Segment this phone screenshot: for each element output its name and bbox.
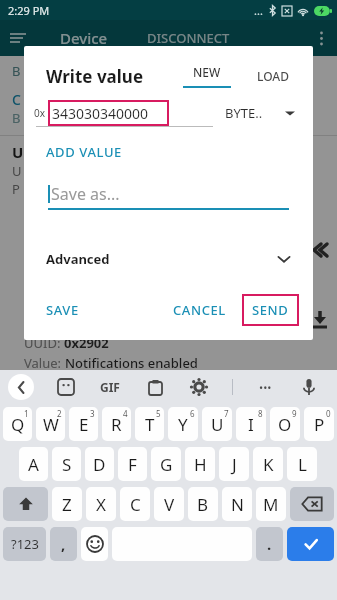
other: Backspace — [301, 493, 323, 515]
staticText: 2 — [57, 408, 62, 419]
staticText: Notifications enabled — [65, 354, 198, 372]
staticText: 1 — [24, 408, 29, 419]
staticText: 0x — [34, 106, 46, 120]
staticText: U — [12, 142, 24, 162]
staticText: 8 — [258, 408, 263, 419]
button[interactable]: E — [69, 407, 98, 441]
staticText: T — [145, 413, 155, 436]
button[interactable]: GIF — [98, 377, 122, 397]
button[interactable]: J — [219, 447, 249, 481]
button[interactable]: R — [102, 407, 131, 441]
button[interactable]: V — [154, 487, 184, 521]
button[interactable]: SEND — [244, 296, 297, 324]
button[interactable]: Backspace — [290, 487, 334, 521]
staticText: . — [267, 534, 272, 554]
button[interactable]: U — [202, 407, 232, 441]
button[interactable]: . — [256, 527, 283, 561]
button[interactable]: M — [256, 487, 286, 521]
button[interactable]: Stickers — [55, 376, 77, 398]
staticText: NEW — [193, 64, 221, 80]
staticText: 7 — [224, 408, 229, 419]
staticText: Save as... — [51, 183, 120, 205]
button[interactable]: Settings — [188, 376, 210, 398]
button[interactable]: Y — [168, 407, 198, 441]
staticText: B — [12, 62, 21, 80]
button[interactable]: CANCEL — [167, 295, 232, 325]
staticText: , — [61, 534, 66, 554]
button[interactable]: Back — [8, 374, 34, 400]
staticText: G — [160, 453, 173, 476]
staticText: BYTE.. — [225, 104, 263, 122]
staticText: ADD VALUE — [46, 143, 122, 161]
button[interactable]: , — [50, 527, 77, 561]
staticText: R — [111, 413, 122, 436]
button[interactable]: NEW — [173, 64, 241, 88]
other: Expand advanced — [277, 252, 291, 266]
staticText: DISCONNECT — [147, 29, 230, 47]
button[interactable]: Save as... — [48, 183, 289, 210]
button[interactable]: H — [185, 447, 215, 481]
button[interactable]: D — [85, 447, 114, 481]
button[interactable]: Emoji — [81, 527, 108, 561]
button[interactable]: B — [188, 487, 218, 521]
staticText: X — [96, 493, 106, 516]
button[interactable]: G — [151, 447, 181, 481]
staticText: O — [278, 413, 292, 436]
button[interactable]: L — [287, 447, 317, 481]
button[interactable]: ADD VALUE — [24, 141, 134, 163]
button[interactable]: Voice input — [298, 376, 320, 398]
staticText: I — [248, 413, 254, 436]
button[interactable]: More — [255, 376, 276, 399]
button[interactable]: SAVE — [40, 295, 85, 325]
staticText: N — [231, 493, 244, 516]
button[interactable]: Q — [3, 407, 32, 441]
button[interactable]: Enter — [287, 527, 334, 561]
button[interactable]: Advanced — [24, 246, 313, 272]
staticText: 2:29 PM — [8, 3, 50, 18]
staticText: Z — [62, 493, 72, 516]
button[interactable]: Clipboard — [144, 376, 166, 398]
button[interactable]: Z — [52, 487, 82, 521]
staticText: B — [197, 493, 209, 516]
button[interactable]: ?123 — [3, 527, 46, 561]
button[interactable]: I — [236, 407, 266, 441]
staticText: ••• — [259, 380, 272, 395]
button[interactable]: 343030340000 — [50, 102, 167, 124]
staticText: LOAD — [257, 68, 289, 84]
staticText: V — [164, 493, 175, 516]
other: Value type — [285, 108, 295, 118]
staticText: SEND — [252, 301, 289, 319]
button[interactable]: T — [135, 407, 164, 441]
staticText: P — [314, 413, 325, 436]
button[interactable]: W — [36, 407, 65, 441]
staticText: Value: — [24, 354, 65, 372]
button[interactable]: S — [52, 447, 81, 481]
button[interactable]: P — [304, 407, 334, 441]
staticText: ... — [254, 3, 263, 18]
staticText: C — [130, 493, 141, 516]
button[interactable]: LOAD — [247, 66, 299, 86]
staticText: 0x2902 — [64, 334, 109, 352]
button[interactable]: F — [118, 447, 147, 481]
staticText: Device — [60, 28, 108, 48]
button[interactable]: X — [86, 487, 116, 521]
other: Shift — [17, 495, 35, 513]
staticText: 343030340000 — [52, 104, 149, 123]
staticText: GIF — [100, 379, 120, 395]
staticText: 9 — [292, 408, 297, 419]
staticText: H — [194, 453, 207, 476]
button[interactable]: BYTE.. — [225, 104, 299, 122]
staticText: Q — [11, 413, 25, 436]
button[interactable]: Shift — [3, 487, 48, 521]
button[interactable]: N — [222, 487, 252, 521]
staticText: SAVE — [46, 301, 79, 319]
staticText: Write value — [46, 65, 144, 88]
staticText: U — [12, 162, 22, 180]
staticText: Advanced — [46, 250, 110, 268]
staticText: 3 — [90, 408, 95, 419]
button[interactable]: O — [270, 407, 300, 441]
button[interactable]: K — [253, 447, 283, 481]
button[interactable]: A — [19, 447, 48, 481]
button[interactable]: C — [120, 487, 150, 521]
